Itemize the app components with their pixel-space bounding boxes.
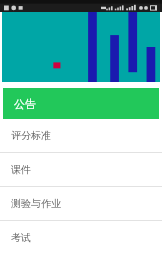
staticText: 课件	[11, 163, 31, 176]
staticText: 测验与作业	[11, 197, 61, 210]
staticText: 公告	[14, 97, 36, 111]
button[interactable]: 测验与作业	[0, 187, 162, 220]
staticText: 评分标准	[11, 129, 51, 142]
staticText: 考试	[11, 231, 31, 244]
button[interactable]: 评分标准	[0, 119, 162, 152]
button[interactable]: 公告	[3, 88, 159, 119]
button[interactable]: 课件	[0, 153, 162, 186]
button[interactable]: 考试	[0, 221, 162, 253]
